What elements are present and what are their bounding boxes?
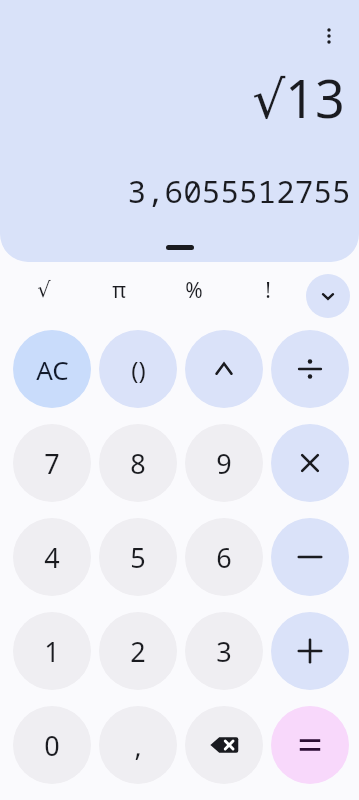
staticText: % — [185, 276, 203, 305]
button[interactable]: % — [170, 266, 218, 314]
button[interactable]: π — [95, 266, 143, 314]
staticText: π — [112, 276, 126, 305]
button[interactable]: Power — [185, 330, 263, 408]
button[interactable]: 4 — [13, 518, 91, 596]
staticText: √ — [37, 278, 51, 302]
staticText: 8 — [130, 445, 146, 482]
staticText: () — [131, 353, 146, 386]
staticText: 5 — [130, 539, 146, 576]
button[interactable]: Minus — [271, 518, 349, 596]
staticText: 4 — [44, 539, 60, 576]
button[interactable]: 1 — [13, 612, 91, 690]
button[interactable]: Plus — [271, 612, 349, 690]
button[interactable]: Backspace — [185, 706, 263, 784]
button[interactable]: Equals — [271, 706, 349, 784]
staticText: 6 — [216, 539, 232, 576]
staticText: 7 — [44, 445, 60, 482]
button[interactable]: 3 — [185, 612, 263, 690]
button[interactable]: 6 — [185, 518, 263, 596]
button[interactable]: ! — [244, 266, 292, 314]
staticText: 2 — [130, 633, 146, 670]
button[interactable]: 2 — [99, 612, 177, 690]
staticText: √13 — [252, 62, 345, 133]
staticText: 9 — [216, 445, 232, 482]
button[interactable]: √ — [20, 266, 68, 314]
button[interactable]: 9 — [185, 424, 263, 502]
button[interactable]: AC — [13, 330, 91, 408]
staticText: ! — [265, 276, 271, 305]
staticText: , — [134, 727, 142, 764]
button[interactable]: More options — [305, 12, 353, 60]
button[interactable]: Divide — [271, 330, 349, 408]
button[interactable]: Expand functions — [306, 274, 350, 318]
button[interactable]: 8 — [99, 424, 177, 502]
staticText: 3,6055512755 — [127, 170, 351, 212]
staticText: AC — [36, 352, 69, 387]
button[interactable]: 7 — [13, 424, 91, 502]
button[interactable]: 0 — [13, 706, 91, 784]
button[interactable]: Multiply — [271, 424, 349, 502]
staticText: 3 — [216, 633, 232, 670]
staticText: 1 — [44, 633, 60, 670]
button[interactable]: () — [99, 330, 177, 408]
button[interactable]: 5 — [99, 518, 177, 596]
staticText: 0 — [44, 727, 60, 764]
button[interactable]: , — [99, 706, 177, 784]
